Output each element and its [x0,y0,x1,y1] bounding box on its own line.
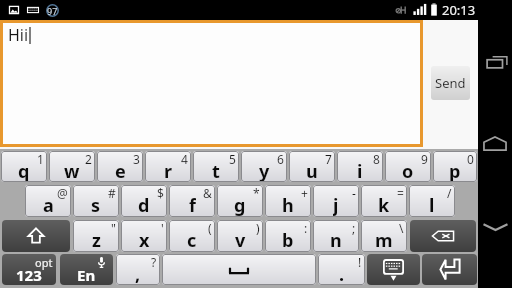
staticText: v [235,228,246,252]
staticText: f [189,193,196,217]
staticText: 6 [277,151,284,167]
button[interactable]: a [25,185,71,217]
button[interactable]: n [313,220,359,252]
staticText: @ [57,185,68,201]
button[interactable]: m [361,220,407,252]
staticText: # [108,185,116,201]
staticText: l [429,193,435,217]
staticText: . [339,262,345,285]
staticText: $ [157,185,164,201]
staticText: p [449,159,461,182]
staticText: ! [358,254,362,270]
staticText: k [378,193,390,217]
staticText: 97 [47,5,58,17]
button[interactable]: Send [431,66,470,100]
staticText: = [397,185,404,201]
button[interactable]: e [97,151,143,182]
button[interactable]: q [1,151,47,182]
button[interactable]: y [241,151,287,182]
staticText: q [18,159,30,182]
button[interactable]: l [409,185,455,217]
button[interactable]: k [361,185,407,217]
button[interactable]: u [289,151,335,182]
staticText: + [301,185,308,201]
staticText: g [234,193,246,217]
button[interactable]: z [73,220,119,252]
staticText: ? [151,254,157,270]
staticText: r [164,159,173,182]
button[interactable]: 123 [2,254,56,285]
button[interactable]: j [313,185,359,217]
button[interactable]: Backspace [410,220,476,252]
staticText: ; [352,220,356,236]
staticText: " [111,220,116,236]
staticText: c [187,228,197,252]
staticText: ' [161,220,164,236]
staticText: 0 [467,151,474,167]
button[interactable]: Switch keyboard [367,254,420,285]
staticText: \ [399,220,404,236]
button[interactable]: Space [162,254,316,285]
staticText: z [92,228,101,252]
button[interactable]: Enter [422,254,477,285]
staticText: Send [435,74,466,92]
staticText: u [306,159,318,182]
staticText: 1 [37,151,44,167]
staticText: o [402,159,414,182]
staticText: / [447,185,452,201]
staticText: n [330,228,342,252]
staticText: Hii [8,24,29,46]
button[interactable]: x [121,220,167,252]
button[interactable]: i [337,151,383,182]
staticText: 7 [325,151,332,167]
button[interactable]: g [217,185,263,217]
button[interactable]: p [433,151,477,182]
staticText: s [91,193,101,217]
staticText: 8 [373,151,380,167]
staticText: e [115,159,126,182]
staticText: 20:13 [442,1,476,19]
staticText: 9 [421,151,428,167]
staticText: * [253,185,260,201]
staticText: 5 [229,151,236,167]
staticText: h [282,193,294,217]
staticText: : [304,220,308,236]
button[interactable]: Hii [3,23,420,144]
button[interactable]: b [265,220,311,252]
button[interactable]: Shift [2,220,70,252]
button[interactable]: t [193,151,239,182]
staticText: , [135,262,141,285]
staticText: ) [256,220,260,236]
button[interactable]: s [73,185,119,217]
staticText: a [43,193,54,217]
button[interactable]: r [145,151,191,182]
button[interactable]: Back [478,183,512,288]
staticText: opt [35,255,53,270]
staticText: En [77,265,96,285]
staticText: m [375,228,393,252]
staticText: j [333,193,339,217]
button[interactable]: , [116,254,160,285]
button[interactable]: c [169,220,215,252]
staticText: b [282,228,294,252]
staticText: w [64,159,80,182]
staticText: 123 [16,265,42,285]
button[interactable]: v [217,220,263,252]
staticText: x [139,228,150,252]
staticText: y [259,159,270,182]
staticText: t [212,159,220,182]
button[interactable]: o [385,151,431,182]
staticText: 4 [181,151,188,167]
button[interactable]: w [49,151,95,182]
button[interactable]: Home [478,103,512,183]
button[interactable]: En [60,254,113,285]
button[interactable]: f [169,185,215,217]
button[interactable]: d [121,185,167,217]
staticText: d [138,193,150,217]
staticText: & [203,185,212,201]
button[interactable]: . [318,254,365,285]
button[interactable]: Recents [478,20,512,103]
staticText: - [352,185,356,201]
staticText: 2 [85,151,92,167]
button[interactable]: h [265,185,311,217]
